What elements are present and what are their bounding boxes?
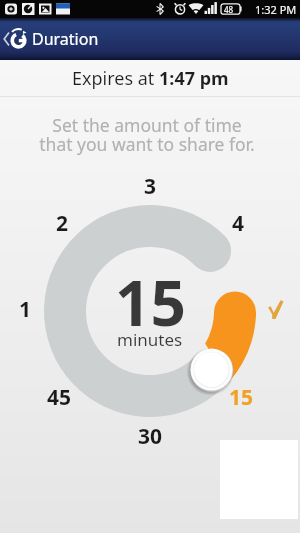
staticText: 45 [47, 383, 72, 407]
button[interactable]: 15 [221, 383, 261, 407]
staticText: 3 [144, 172, 157, 196]
button[interactable]: 1 [5, 295, 45, 319]
staticText: Expires at 1:47 pm [72, 66, 229, 91]
staticText: 1:32 PM [255, 2, 297, 17]
button[interactable]: Confirm duration [263, 295, 293, 325]
staticText: Duration [32, 28, 99, 50]
staticText: 1 [19, 295, 32, 319]
button[interactable]: 45 [39, 383, 79, 407]
staticText: 2 [56, 209, 69, 233]
button[interactable]: 4 [218, 209, 258, 233]
button[interactable]: Navigate up [0, 18, 30, 60]
staticText: 30 [138, 422, 163, 446]
button[interactable]: 30 [130, 422, 170, 446]
staticText: 48 [224, 4, 234, 15]
staticText: minutes [117, 328, 183, 351]
button[interactable]: 2 [42, 209, 82, 233]
staticText: Set the amount of time that you want to … [0, 113, 297, 156]
staticText: 15 [115, 260, 186, 344]
staticText: 15 [229, 383, 254, 407]
button[interactable]: 3 [130, 172, 170, 196]
staticText: 4 [232, 209, 245, 233]
